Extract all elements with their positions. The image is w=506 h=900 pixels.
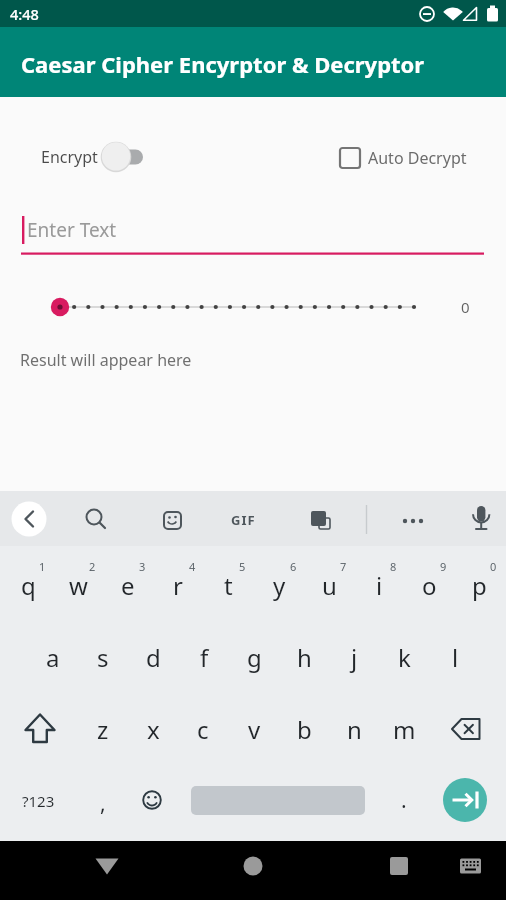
staticText: Encrypt bbox=[41, 146, 98, 168]
staticText: 4:48 bbox=[10, 4, 39, 24]
button[interactable] bbox=[229, 842, 277, 890]
staticText: Enter Text bbox=[27, 217, 117, 243]
staticText: 0 bbox=[490, 559, 497, 574]
button[interactable]: k bbox=[334, 633, 474, 681]
button[interactable]: j bbox=[284, 633, 424, 681]
button[interactable]: ?123 bbox=[0, 777, 108, 825]
button[interactable] bbox=[440, 701, 492, 757]
staticText: h bbox=[297, 641, 312, 674]
staticText: p bbox=[472, 569, 487, 602]
staticText: t bbox=[224, 569, 233, 602]
button[interactable]: d bbox=[83, 633, 223, 681]
staticText: . bbox=[401, 786, 407, 815]
button[interactable]: s bbox=[33, 633, 173, 681]
staticText: 5 bbox=[239, 559, 246, 574]
button[interactable] bbox=[83, 842, 131, 890]
button[interactable]: v bbox=[184, 705, 324, 753]
button[interactable]: u bbox=[259, 561, 399, 609]
button[interactable]: GIF bbox=[173, 496, 313, 544]
button[interactable]: w bbox=[8, 561, 148, 609]
button[interactable] bbox=[14, 701, 66, 757]
button[interactable]: r bbox=[108, 561, 248, 609]
button[interactable] bbox=[336, 144, 364, 172]
staticText: 8 bbox=[390, 559, 397, 574]
staticText: 2 bbox=[89, 559, 96, 574]
button[interactable]: b bbox=[234, 705, 374, 753]
staticText: 0 bbox=[461, 297, 470, 317]
staticText: u bbox=[322, 569, 337, 602]
staticText: 9 bbox=[440, 559, 447, 574]
button[interactable]: i bbox=[309, 561, 449, 609]
button[interactable] bbox=[77, 501, 113, 537]
button[interactable]: g bbox=[184, 633, 324, 681]
staticText: 1 bbox=[39, 559, 46, 574]
staticText: i bbox=[376, 569, 383, 602]
button[interactable] bbox=[98, 140, 148, 174]
staticText: o bbox=[422, 569, 437, 602]
button[interactable]: a bbox=[0, 633, 123, 681]
staticText: Auto Decrypt bbox=[368, 147, 467, 169]
staticText: z bbox=[97, 713, 109, 746]
staticText: s bbox=[97, 641, 109, 674]
button[interactable]: q bbox=[0, 561, 98, 609]
button[interactable]: c bbox=[133, 705, 273, 753]
button[interactable] bbox=[44, 290, 430, 324]
staticText: Result will appear here bbox=[20, 349, 192, 371]
staticText: j bbox=[351, 641, 358, 674]
staticText: w bbox=[69, 569, 88, 602]
button[interactable]: p bbox=[409, 561, 506, 609]
button[interactable]: e bbox=[58, 561, 198, 609]
button[interactable]: o bbox=[359, 561, 499, 609]
staticText: v bbox=[248, 713, 261, 746]
button[interactable]: f bbox=[134, 633, 274, 681]
staticText: c bbox=[197, 713, 209, 746]
staticText: m bbox=[393, 713, 416, 746]
staticText: d bbox=[146, 641, 161, 674]
button[interactable] bbox=[395, 503, 431, 539]
button[interactable]: m bbox=[334, 705, 474, 753]
staticText: k bbox=[398, 641, 411, 674]
button[interactable] bbox=[20, 212, 486, 256]
button[interactable]: z bbox=[33, 705, 173, 753]
staticText: q bbox=[21, 569, 36, 602]
staticText: 3 bbox=[139, 559, 146, 574]
button[interactable]: n bbox=[284, 705, 424, 753]
button[interactable] bbox=[11, 501, 47, 537]
staticText: x bbox=[147, 713, 160, 746]
button[interactable]: t bbox=[158, 561, 298, 609]
staticText: , bbox=[100, 789, 106, 818]
staticText: n bbox=[347, 713, 362, 746]
button[interactable] bbox=[152, 501, 188, 537]
staticText: 6 bbox=[290, 559, 297, 574]
staticText: 4 bbox=[189, 559, 196, 574]
staticText: b bbox=[297, 713, 312, 746]
button[interactable]: l bbox=[385, 633, 506, 681]
staticText: r bbox=[173, 569, 183, 602]
button[interactable] bbox=[452, 845, 492, 885]
button[interactable] bbox=[443, 778, 487, 822]
staticText: f bbox=[200, 641, 209, 674]
button[interactable]: , bbox=[33, 779, 173, 827]
button[interactable]: y bbox=[209, 561, 349, 609]
button[interactable] bbox=[463, 501, 499, 537]
staticText: ?123 bbox=[22, 791, 55, 811]
staticText: 7 bbox=[340, 559, 347, 574]
button[interactable]: h bbox=[234, 633, 374, 681]
staticText: l bbox=[452, 641, 459, 674]
staticText: g bbox=[247, 641, 262, 674]
button[interactable] bbox=[134, 782, 170, 818]
staticText: GIF bbox=[231, 511, 256, 529]
button[interactable] bbox=[300, 501, 340, 541]
button[interactable] bbox=[375, 842, 423, 890]
staticText: e bbox=[121, 569, 135, 602]
button[interactable]: x bbox=[83, 705, 223, 753]
staticText: y bbox=[273, 569, 286, 602]
button[interactable]: . bbox=[334, 776, 474, 824]
staticText: a bbox=[46, 641, 60, 674]
staticText: Caesar Cipher Encyrptor & Decryptor bbox=[21, 49, 425, 79]
